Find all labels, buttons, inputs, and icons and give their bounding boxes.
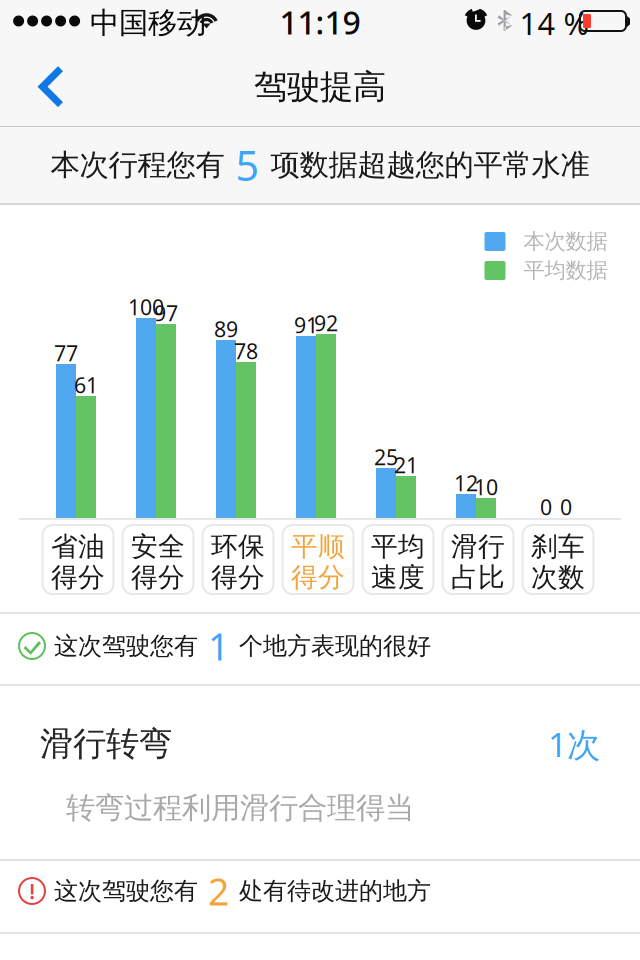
staticText: 77: [54, 339, 78, 367]
staticText: 项数据超越您的平常水准: [270, 147, 589, 183]
staticText: 环保: [211, 530, 265, 563]
staticText: 1: [198, 621, 239, 671]
staticText: 次数: [531, 561, 585, 594]
staticText: 21: [394, 451, 418, 479]
staticText: 25: [374, 443, 398, 471]
staticText: 1次: [548, 722, 600, 766]
staticText: 92: [314, 309, 338, 337]
staticText: 平顺: [291, 530, 345, 563]
staticText: 个地方表现的很好: [239, 631, 431, 661]
staticText: 0: [560, 493, 572, 521]
staticText: 91: [294, 311, 318, 339]
staticText: 11:19: [279, 1, 360, 43]
staticText: 本次行程您有: [50, 147, 224, 183]
staticText: 平均: [371, 530, 425, 563]
staticText: 100: [128, 293, 164, 321]
staticText: 5: [224, 138, 270, 192]
staticText: 省油: [51, 530, 105, 563]
staticText: 转弯过程利用滑行合理得当: [66, 790, 414, 826]
staticText: 14 %: [519, 3, 588, 43]
staticText: 刹车: [531, 530, 585, 563]
staticText: 12: [454, 469, 478, 497]
staticText: 得分: [291, 561, 345, 594]
staticText: 61: [74, 371, 98, 399]
staticText: 得分: [51, 561, 105, 594]
staticText: 速度: [371, 561, 425, 594]
staticText: 97: [154, 299, 178, 327]
staticText: 本次数据: [523, 228, 607, 255]
staticText: 2: [198, 866, 239, 916]
staticText: 占比: [451, 561, 505, 594]
button[interactable]: 滑行转弯: [0, 686, 640, 859]
staticText: 78: [234, 337, 258, 365]
staticText: 中国移动: [90, 5, 206, 41]
staticText: 得分: [211, 561, 265, 594]
staticText: 这次驾驶您有: [54, 876, 198, 906]
staticText: 得分: [131, 561, 185, 594]
staticText: 安全: [131, 530, 185, 563]
staticText: 滑行: [451, 530, 505, 563]
staticText: 89: [214, 315, 238, 343]
button[interactable]: 返回: [37, 60, 77, 114]
staticText: 驾驶提高: [254, 66, 386, 107]
staticText: 10: [474, 473, 498, 501]
staticText: 这次驾驶您有: [54, 631, 198, 661]
staticText: 处有待改进的地方: [239, 876, 431, 906]
staticText: 0: [540, 493, 552, 521]
staticText: 平均数据: [523, 257, 607, 284]
staticText: 滑行转弯: [40, 723, 172, 764]
